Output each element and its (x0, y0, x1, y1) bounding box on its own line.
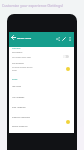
staticText: App Theme (12, 85, 22, 87)
staticText: General (12, 78, 18, 80)
staticText: Display Preferred (12, 125, 28, 128)
staticText: Push notification (12, 52, 23, 54)
staticText: Games (12, 69, 17, 71)
button[interactable]: Back (10, 34, 17, 41)
button[interactable]: Share (55, 36, 61, 42)
staticText: Customize your experience (Settings) (2, 3, 63, 8)
staticText: Notifications (12, 48, 21, 50)
button[interactable]: Push notification toggle (62, 54, 70, 58)
staticText: Play reminders (12, 62, 24, 64)
staticText: Preferred Language (12, 116, 30, 119)
staticText: The words reminder will help (12, 66, 33, 68)
staticText: App Language (12, 96, 25, 98)
staticText: Get notified about news (12, 56, 31, 58)
button[interactable]: More options (67, 36, 73, 42)
button[interactable]: Edit (61, 36, 67, 42)
staticText: Simply Learn (17, 37, 32, 40)
staticText: Data Language (12, 106, 26, 109)
